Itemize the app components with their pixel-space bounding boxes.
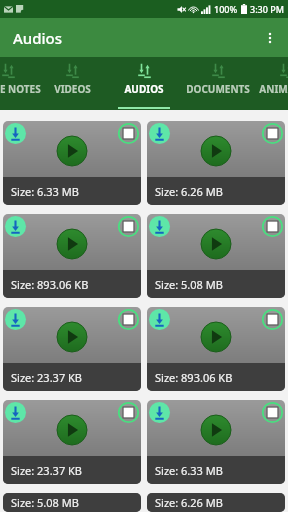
button[interactable]: Download [149,402,170,423]
button[interactable]: More options [252,20,288,56]
staticText: 3:30 PM [250,3,284,15]
button[interactable]: Play [57,136,87,166]
button[interactable]: Select [262,402,283,423]
button[interactable]: Play [147,121,285,205]
button[interactable]: Play [3,400,141,484]
staticText: AUDIOS [124,82,164,96]
button[interactable]: Play [147,307,285,391]
button[interactable]: Play [201,415,231,445]
button[interactable]: Select [262,216,283,237]
button[interactable]: Select [118,402,139,423]
button[interactable]: Play [201,322,231,352]
button[interactable]: Download [5,216,26,237]
staticText: Size: 5.08 MB [155,277,223,292]
button[interactable]: VOICE NOTES [0,57,46,110]
button[interactable]: Select [118,495,139,512]
button[interactable]: Play [201,229,231,259]
button[interactable]: Play [147,493,285,512]
button[interactable]: Download [5,123,26,144]
button[interactable]: Download [149,216,170,237]
button[interactable]: Play [57,229,87,259]
button[interactable]: Download [5,495,26,512]
staticText: Size: 6.33 MB [11,184,79,199]
button[interactable]: Play [3,493,141,512]
button[interactable]: AUDIOS [106,57,182,110]
button[interactable]: Play [3,121,141,205]
button[interactable]: Play [57,322,87,352]
button[interactable]: Select [262,123,283,144]
button[interactable]: Select [118,216,139,237]
staticText: ANIMATED [259,82,288,96]
staticText: Size: 5.08 MB [11,495,79,510]
staticText: VOICE NOTES [0,82,41,96]
button[interactable]: Play [3,307,141,391]
staticText: Size: 23.37 KB [11,463,82,478]
staticText: Audios [13,28,63,48]
button[interactable]: Play [57,415,87,445]
button[interactable]: Download [149,495,170,512]
staticText: Size: 6.26 MB [155,495,223,510]
staticText: Size: 6.26 MB [155,184,223,199]
button[interactable]: Select [118,123,139,144]
staticText: VIDEOS [54,82,91,96]
staticText: 100% [214,3,238,15]
button[interactable]: Play [201,136,231,166]
button[interactable]: Select [118,309,139,330]
button[interactable]: Download [149,123,170,144]
button[interactable]: Play [147,214,285,298]
button[interactable]: Download [149,309,170,330]
button[interactable]: ANIMATED [248,57,288,110]
staticText: Size: 23.37 KB [11,370,82,385]
button[interactable]: VIDEOS [34,57,110,110]
button[interactable]: DOCUMENTS [180,57,256,110]
button[interactable]: Select [262,495,283,512]
button[interactable]: Play [147,400,285,484]
staticText: Size: 893.06 KB [11,277,89,292]
button[interactable]: Play [3,214,141,298]
staticText: Size: 6.33 MB [155,463,223,478]
button[interactable]: Download [5,402,26,423]
staticText: DOCUMENTS [186,82,250,96]
button[interactable]: Download [5,309,26,330]
staticText: Size: 893.06 KB [155,370,233,385]
button[interactable]: Select [262,309,283,330]
